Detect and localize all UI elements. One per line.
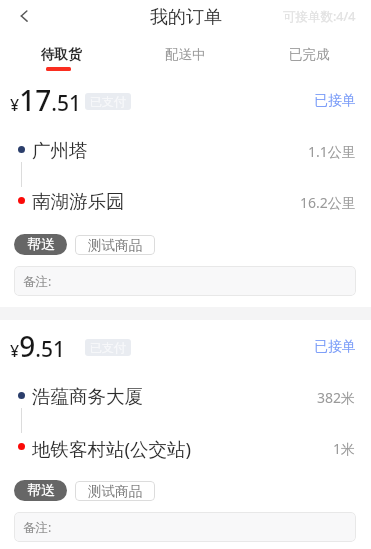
staticText: 地铁客村站(公交站) — [32, 436, 192, 461]
staticText: 已接单 — [314, 92, 356, 110]
button[interactable]: 帮送 — [14, 480, 67, 501]
button[interactable]: 备注: — [14, 266, 356, 296]
button[interactable]: 配送中 — [123, 36, 247, 74]
staticText: 广州塔 — [32, 139, 88, 162]
staticText: 可接单数:4/4 — [283, 8, 356, 25]
staticText: ¥17.51 — [10, 81, 81, 119]
button[interactable]: ¥17.51 — [0, 74, 371, 307]
staticText: 已完成 — [289, 46, 330, 63]
staticText: 帮送 — [27, 236, 55, 254]
staticText: 382米 — [317, 388, 356, 407]
staticText: 测试商品 — [88, 483, 142, 500]
staticText: 已支付 — [90, 340, 126, 355]
staticText: 备注: — [23, 273, 52, 290]
staticText: 1.1公里 — [308, 142, 356, 161]
button[interactable]: 帮送 — [14, 234, 67, 255]
staticText: 已支付 — [90, 94, 126, 109]
button[interactable]: Back — [9, 2, 37, 30]
button[interactable]: 待取货 — [0, 36, 123, 74]
staticText: ¥9.51 — [10, 327, 65, 365]
button[interactable]: ¥9.51 — [0, 320, 371, 549]
button[interactable]: 测试商品 — [75, 235, 155, 255]
staticText: 待取货 — [41, 46, 82, 63]
staticText: 帮送 — [27, 482, 55, 500]
staticText: 已接单 — [314, 338, 356, 356]
staticText: 备注: — [23, 519, 52, 536]
button[interactable]: 已接单 — [314, 92, 356, 110]
button[interactable]: 已接单 — [314, 338, 356, 356]
staticText: 浩蕴商务大厦 — [32, 385, 143, 408]
staticText: 测试商品 — [88, 237, 142, 254]
button[interactable]: 备注: — [14, 512, 356, 542]
staticText: 1米 — [333, 439, 356, 458]
button[interactable]: 测试商品 — [75, 481, 155, 501]
staticText: 16.2公里 — [300, 193, 356, 212]
staticText: 南湖游乐园 — [32, 190, 125, 213]
staticText: 配送中 — [165, 46, 206, 63]
button[interactable]: 已完成 — [247, 36, 371, 74]
staticText: 我的订单 — [150, 6, 222, 29]
